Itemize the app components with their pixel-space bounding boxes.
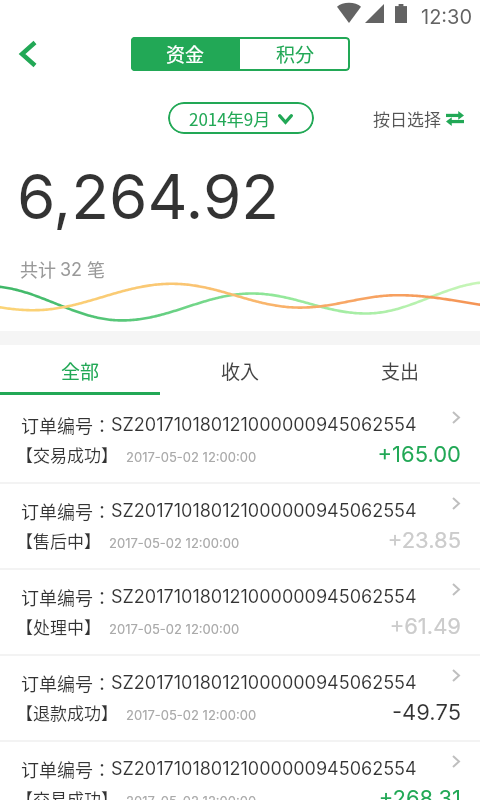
staticText: SZ201710180121000000945062554 <box>111 672 417 694</box>
button[interactable]: 2014年9月 <box>168 102 314 134</box>
staticText: 共计 <box>20 256 56 282</box>
staticText: 6,264.92 <box>17 159 280 234</box>
staticText: 2017-05-02 12:00:00 <box>109 535 240 551</box>
staticText: 2017-05-02 12:00:00 <box>126 793 257 800</box>
staticText: 按日选择 <box>373 106 441 131</box>
staticText: +23.85 <box>0 527 461 554</box>
button[interactable]: Back <box>6 32 50 76</box>
staticText: 2017-05-02 12:00:00 <box>109 621 240 637</box>
staticText: 2017-05-02 12:00:00 <box>126 449 257 465</box>
button[interactable]: 全部 <box>0 345 160 395</box>
button[interactable]: 支出 <box>320 345 480 395</box>
staticText: 订单编号： <box>21 756 111 782</box>
staticText: 【退款成功】 <box>16 700 118 725</box>
staticText: 【交易成功】 <box>16 442 118 467</box>
staticText: 全部 <box>61 357 100 385</box>
staticText: SZ201710180121000000945062554 <box>111 586 417 608</box>
staticText: 积分 <box>276 40 315 68</box>
button[interactable]: 订单编号： <box>0 398 480 484</box>
staticText: 12:30 <box>421 5 473 29</box>
staticText: -49.75 <box>0 699 461 726</box>
staticText: 订单编号： <box>21 670 111 696</box>
staticText: 支出 <box>381 357 420 385</box>
staticText: 订单编号： <box>21 498 111 524</box>
staticText: SZ201710180121000000945062554 <box>111 414 417 436</box>
staticText: +165.00 <box>0 441 461 468</box>
button[interactable]: 资金 <box>131 37 240 71</box>
staticText: 【交易成功】 <box>16 786 118 800</box>
staticText: SZ201710180121000000945062554 <box>111 500 417 522</box>
button[interactable]: 订单编号： <box>0 570 480 656</box>
staticText: +61.49 <box>0 613 461 640</box>
staticText: 32 <box>60 259 83 281</box>
staticText: SZ201710180121000000945062554 <box>111 758 417 780</box>
staticText: 2014年9月 <box>189 106 271 131</box>
staticText: 【处理中】 <box>16 614 101 639</box>
button[interactable]: 按日选择 <box>373 102 464 134</box>
staticText: +268.31 <box>0 785 461 800</box>
staticText: 收入 <box>221 357 260 385</box>
staticText: 订单编号： <box>21 412 111 438</box>
button[interactable]: 订单编号： <box>0 742 480 800</box>
button[interactable]: 订单编号： <box>0 484 480 570</box>
button[interactable]: 积分 <box>240 37 350 71</box>
other: Switch to day view <box>446 110 464 127</box>
staticText: 【售后中】 <box>16 528 101 553</box>
staticText: 订单编号： <box>21 584 111 610</box>
button[interactable]: 收入 <box>160 345 320 395</box>
staticText: 笔 <box>87 256 105 282</box>
staticText: 2017-05-02 12:00:00 <box>126 707 257 723</box>
staticText: 资金 <box>166 40 205 68</box>
button[interactable]: 订单编号： <box>0 656 480 742</box>
